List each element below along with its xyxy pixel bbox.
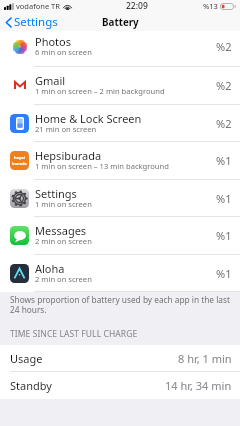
staticText: %1 xyxy=(216,228,232,243)
staticText: Settings xyxy=(14,14,58,30)
staticText: 6 min on screen xyxy=(35,47,92,57)
staticText: Shows proportion of battery used by each… xyxy=(10,294,232,316)
staticText: Aloha xyxy=(35,261,65,276)
staticText: 2 min on screen xyxy=(35,236,92,246)
staticText: Usage xyxy=(10,351,43,366)
staticText: Hepsiburada xyxy=(35,148,102,163)
staticText: 1 min on screen – 2 min background xyxy=(35,86,165,96)
button[interactable]: Gmail xyxy=(0,67,240,105)
staticText: %1 xyxy=(216,266,232,281)
staticText: Settings xyxy=(35,186,77,201)
staticText: 8 hr, 1 min xyxy=(178,351,232,366)
staticText: 2 min on screen xyxy=(35,274,92,284)
button[interactable]: hepsi xyxy=(0,142,240,180)
button[interactable]: Standby xyxy=(0,372,240,399)
staticText: 1 min on screen – 13 min background xyxy=(35,161,169,171)
staticText: %13 xyxy=(203,1,218,11)
staticText: Gmail xyxy=(35,73,66,88)
button[interactable]: Settings xyxy=(5,14,58,30)
staticText: 14 hr, 34 min xyxy=(165,378,232,393)
staticText: Standby xyxy=(10,378,52,393)
staticText: 1 min on screen xyxy=(35,199,92,209)
button[interactable]: Settings xyxy=(0,180,240,217)
staticText: vodafone TR xyxy=(16,1,60,11)
button[interactable]: Aloha xyxy=(0,255,240,292)
staticText: hepsi xyxy=(14,155,26,161)
staticText: %2 xyxy=(216,116,232,131)
staticText: Home & Lock Screen xyxy=(35,111,142,126)
button[interactable]: Messages xyxy=(0,217,240,255)
staticText: %2 xyxy=(216,78,232,93)
staticText: %1 xyxy=(216,191,232,206)
staticText: Messages xyxy=(35,223,87,238)
button[interactable]: Home & Lock Screen xyxy=(0,105,240,142)
button[interactable]: Usage xyxy=(0,345,240,372)
staticText: Battery xyxy=(102,16,139,29)
staticText: %1 xyxy=(216,153,232,168)
staticText: 22:09 xyxy=(126,0,148,12)
staticText: Photos xyxy=(35,34,72,49)
button[interactable]: Photos xyxy=(0,31,240,67)
staticText: TIME SINCE LAST FULL CHARGE xyxy=(10,328,138,340)
staticText: %2 xyxy=(216,39,232,54)
staticText: 21 min on screen xyxy=(35,124,97,134)
staticText: burada xyxy=(12,161,27,167)
